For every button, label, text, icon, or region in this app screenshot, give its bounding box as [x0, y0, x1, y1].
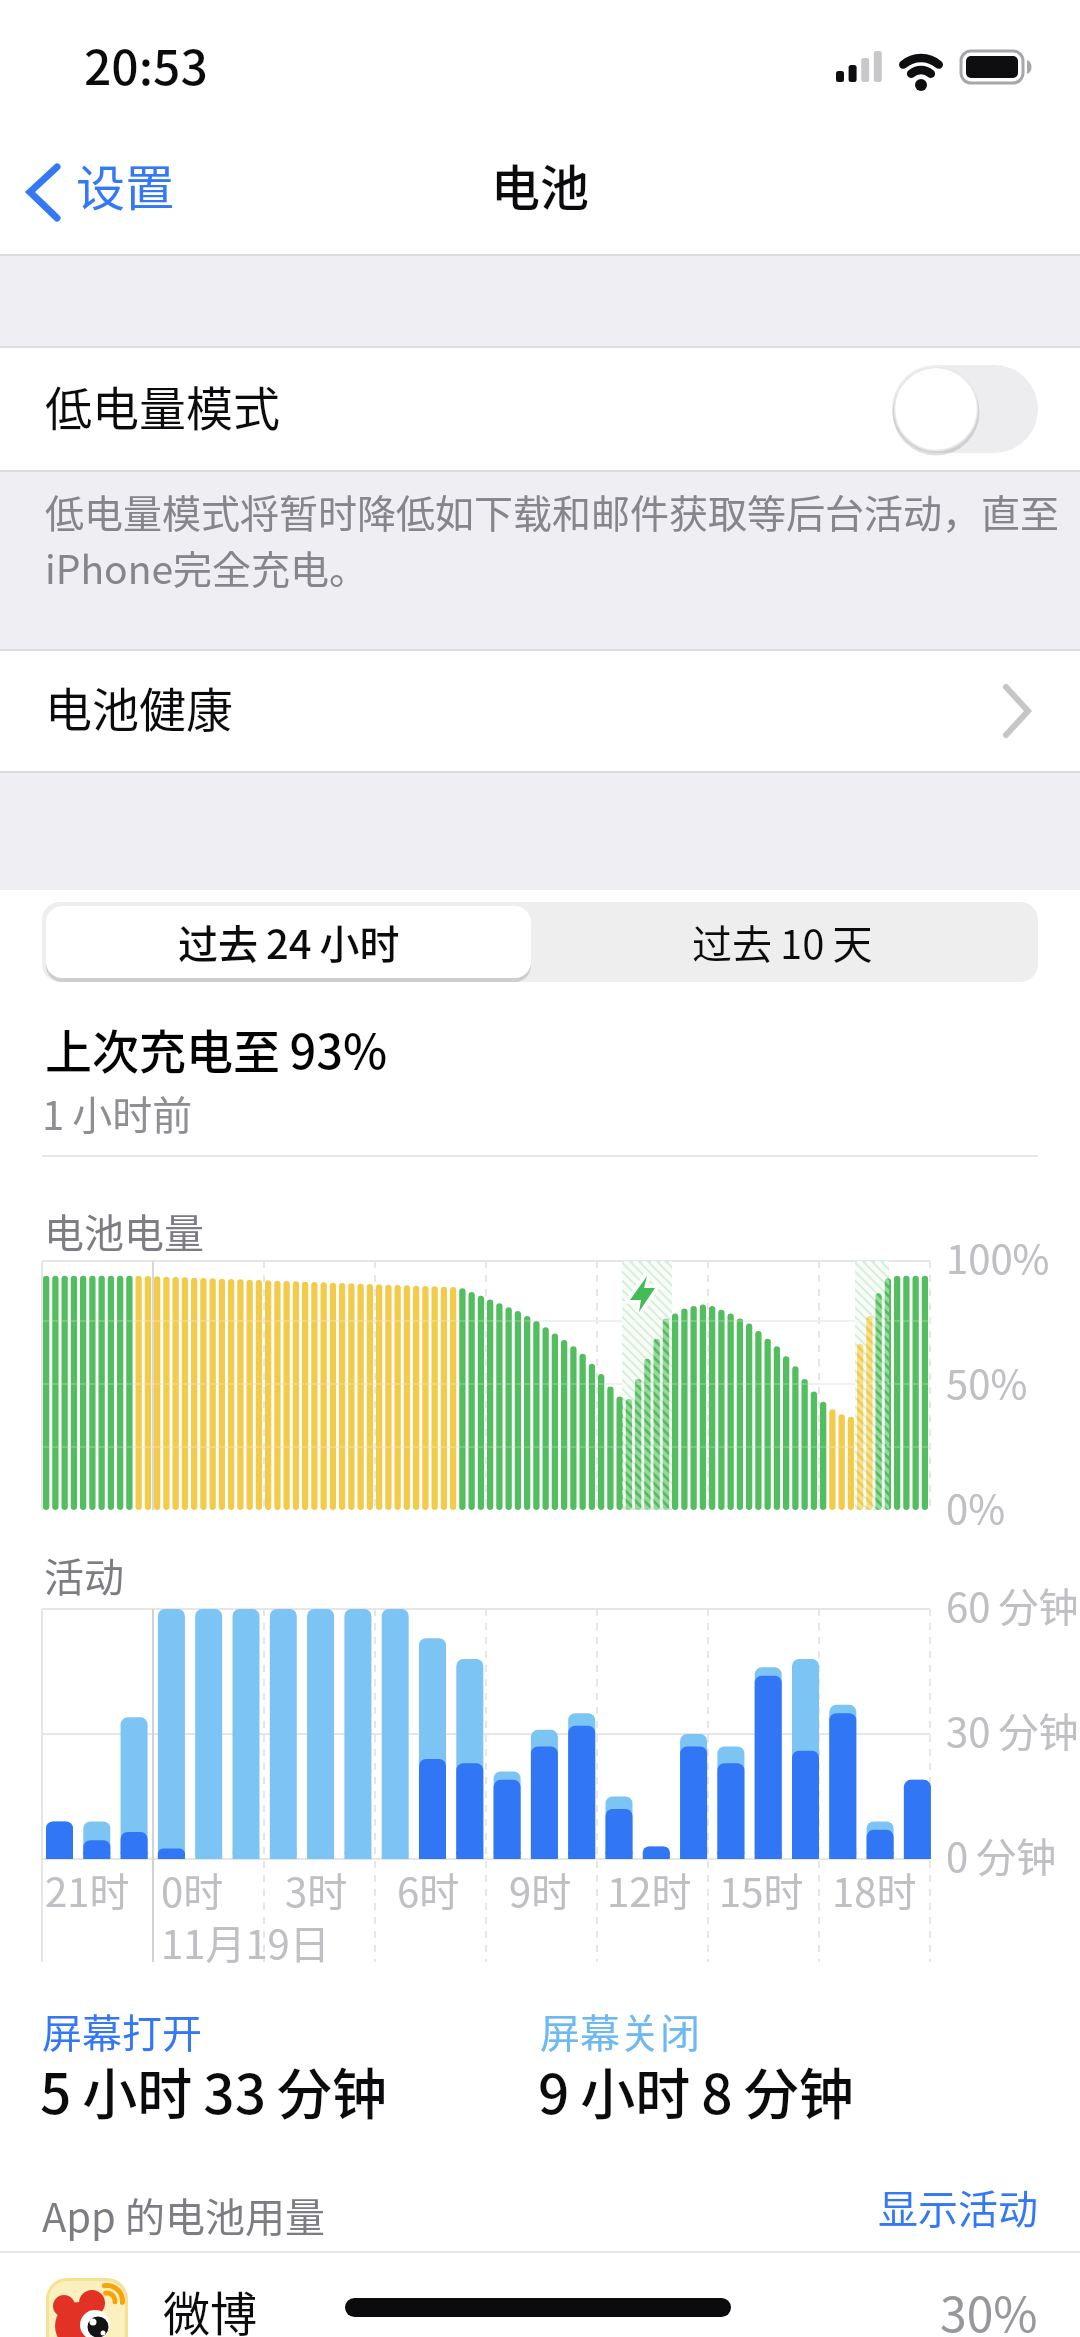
staticText: 低电量模式 [45, 371, 280, 439]
button[interactable] [892, 365, 1038, 453]
staticText: 屏幕关闭 [540, 2002, 700, 2060]
staticText: 9 小时 8 分钟 [538, 2050, 854, 2130]
staticText: 11月19日 [161, 1913, 330, 1971]
staticText: 0时 [161, 1861, 224, 1919]
staticText: 活动 [44, 1546, 124, 1604]
staticText: 设置 [76, 149, 175, 220]
staticText: 电池健康 [45, 672, 233, 740]
staticText: 30 分钟 [946, 1701, 1079, 1759]
staticText: 21时 [45, 1861, 130, 1919]
staticText: 1 小时前 [42, 1084, 193, 1142]
staticText: 0% [946, 1478, 1006, 1536]
staticText: App 的电池用量 [42, 2186, 325, 2244]
staticText: 6时 [397, 1861, 460, 1919]
staticText: 100% [946, 1228, 1050, 1286]
staticText: 30% [940, 2276, 1038, 2337]
staticText: 上次充电至 93% [45, 1014, 388, 1082]
staticText: 电池电量 [44, 1202, 204, 1260]
staticText: 电池 [491, 149, 590, 220]
staticText: 18时 [832, 1861, 917, 1919]
staticText: 过去 24 小时 [178, 913, 400, 971]
button[interactable] [0, 2253, 1080, 2337]
button[interactable]: 显示活动 [700, 2176, 1038, 2238]
staticText: 屏幕打开 [42, 2002, 202, 2060]
staticText: 12时 [607, 1861, 692, 1919]
staticText: 50% [946, 1353, 1028, 1411]
staticText: 60 分钟 [946, 1576, 1079, 1634]
button[interactable] [0, 650, 1080, 772]
staticText: 9时 [509, 1861, 572, 1919]
button[interactable] [0, 347, 1080, 471]
staticText: 微博 [163, 2276, 257, 2337]
staticText: 3时 [285, 1861, 348, 1919]
staticText: 5 小时 33 分钟 [40, 2050, 388, 2130]
button[interactable] [16, 146, 186, 236]
staticText: 0 分钟 [946, 1826, 1057, 1884]
button[interactable]: 过去 24 小时 [46, 906, 531, 978]
staticText: 过去 10 天 [692, 913, 873, 971]
staticText: 显示活动 [878, 2178, 1038, 2236]
staticText: 低电量模式将暂时降低如下载和邮件获取等后台活动，直至 iPhone完全充电。 [45, 483, 1060, 595]
staticText: 15时 [719, 1861, 804, 1919]
staticText: 20:53 [84, 29, 208, 99]
button[interactable]: 过去 10 天 [531, 906, 1034, 978]
